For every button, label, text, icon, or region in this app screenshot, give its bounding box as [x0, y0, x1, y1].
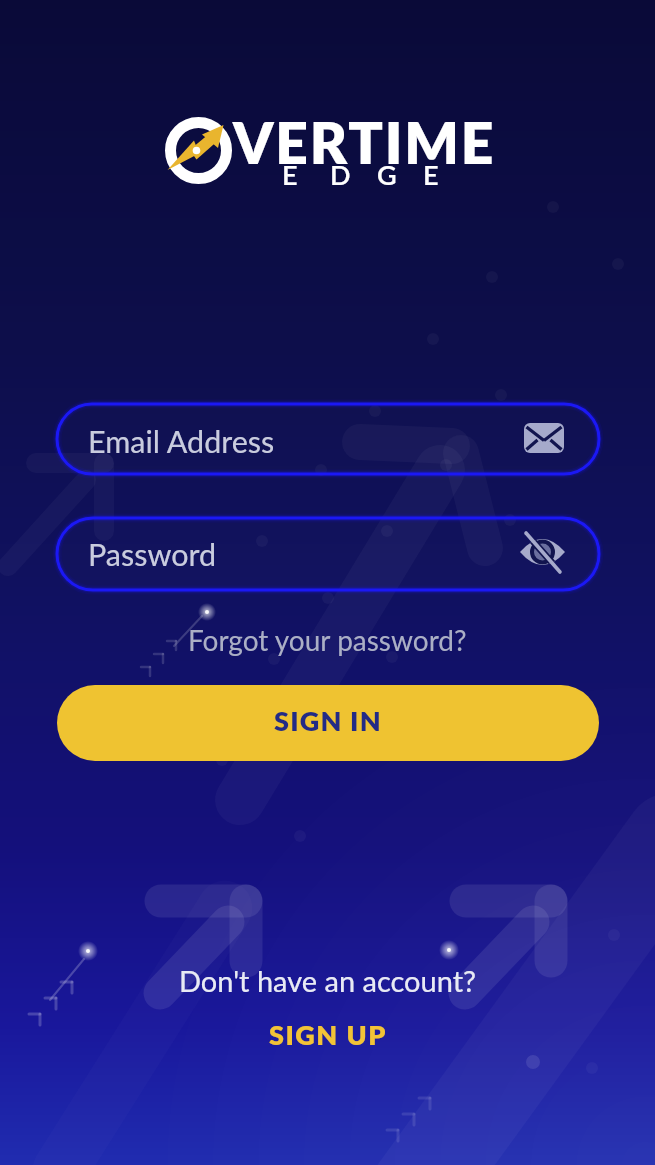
staticText: G: [377, 158, 397, 190]
staticText: SIGN IN: [274, 704, 382, 736]
button[interactable]: [57, 518, 599, 590]
staticText: Forgot your password?: [188, 623, 467, 657]
button[interactable]: Forgot your password?: [188, 623, 467, 657]
staticText: E: [282, 158, 298, 190]
staticText: E: [423, 158, 439, 190]
staticText: Password: [88, 536, 217, 573]
staticText: Email Address: [88, 423, 275, 460]
staticText: Don't have an account?: [179, 963, 477, 998]
staticText: D: [330, 158, 351, 190]
button[interactable]: [57, 685, 599, 761]
staticText: VERTIME: [233, 108, 496, 176]
staticText: SIGN UP: [269, 1018, 387, 1050]
button[interactable]: [57, 404, 599, 474]
button[interactable]: SIGN UP: [269, 1018, 387, 1050]
